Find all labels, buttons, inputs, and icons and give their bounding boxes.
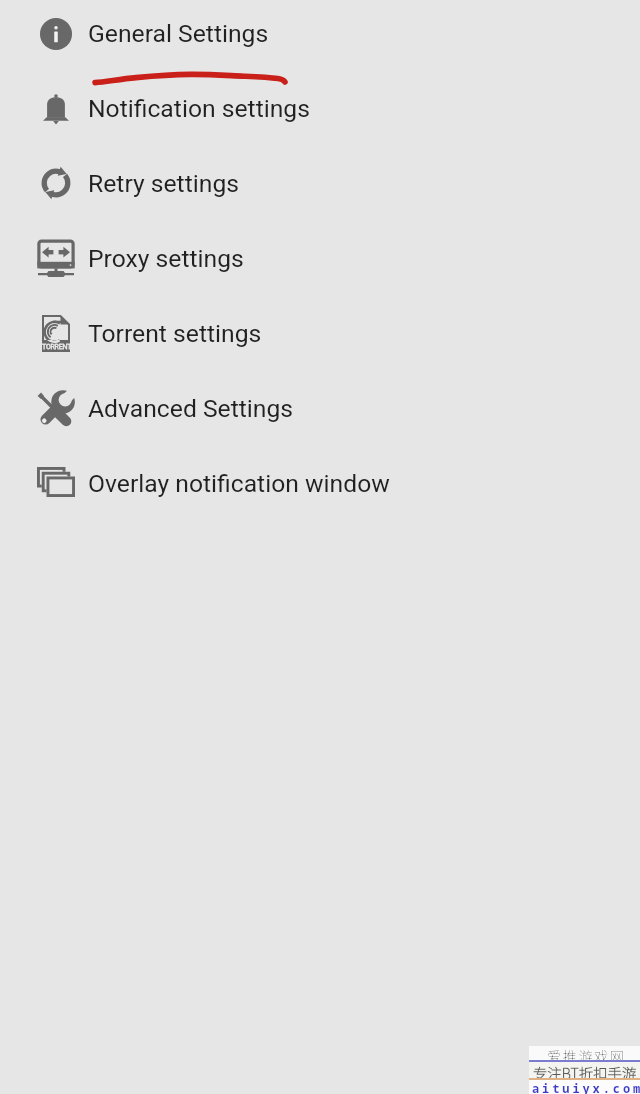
staticText: TORRENT [42, 343, 70, 351]
staticText: Advanced Settings [88, 394, 294, 423]
button[interactable]: Proxy settings [0, 221, 640, 296]
button[interactable]: Overlay notification window [0, 446, 640, 521]
button[interactable]: Torrent settings [0, 296, 640, 371]
staticText: General Settings [88, 19, 269, 48]
other: Overlay notification window [37, 467, 75, 497]
staticText: aituiyx.com [532, 1080, 640, 1094]
staticText: Torrent settings [88, 319, 262, 348]
other: Torrent settings [42, 315, 70, 352]
other: General settings [39, 17, 73, 51]
other: Proxy settings [37, 239, 75, 277]
button[interactable]: Retry settings [0, 146, 640, 221]
button[interactable]: General settings [0, 0, 640, 71]
staticText: Overlay notification window [88, 469, 390, 498]
staticText: Retry settings [88, 169, 239, 198]
button[interactable]: Advanced settings [0, 371, 640, 446]
staticText: Notification settings [88, 94, 310, 123]
staticText: 爱推游戏网 [547, 1046, 626, 1060]
other: Notification settings [43, 94, 69, 125]
other: Retry settings [38, 165, 74, 201]
staticText: Proxy settings [88, 244, 244, 273]
button[interactable]: Notification settings [0, 71, 640, 146]
staticText: 专注BT折扣手游 [533, 1062, 637, 1078]
other: Advanced settings [35, 390, 75, 430]
